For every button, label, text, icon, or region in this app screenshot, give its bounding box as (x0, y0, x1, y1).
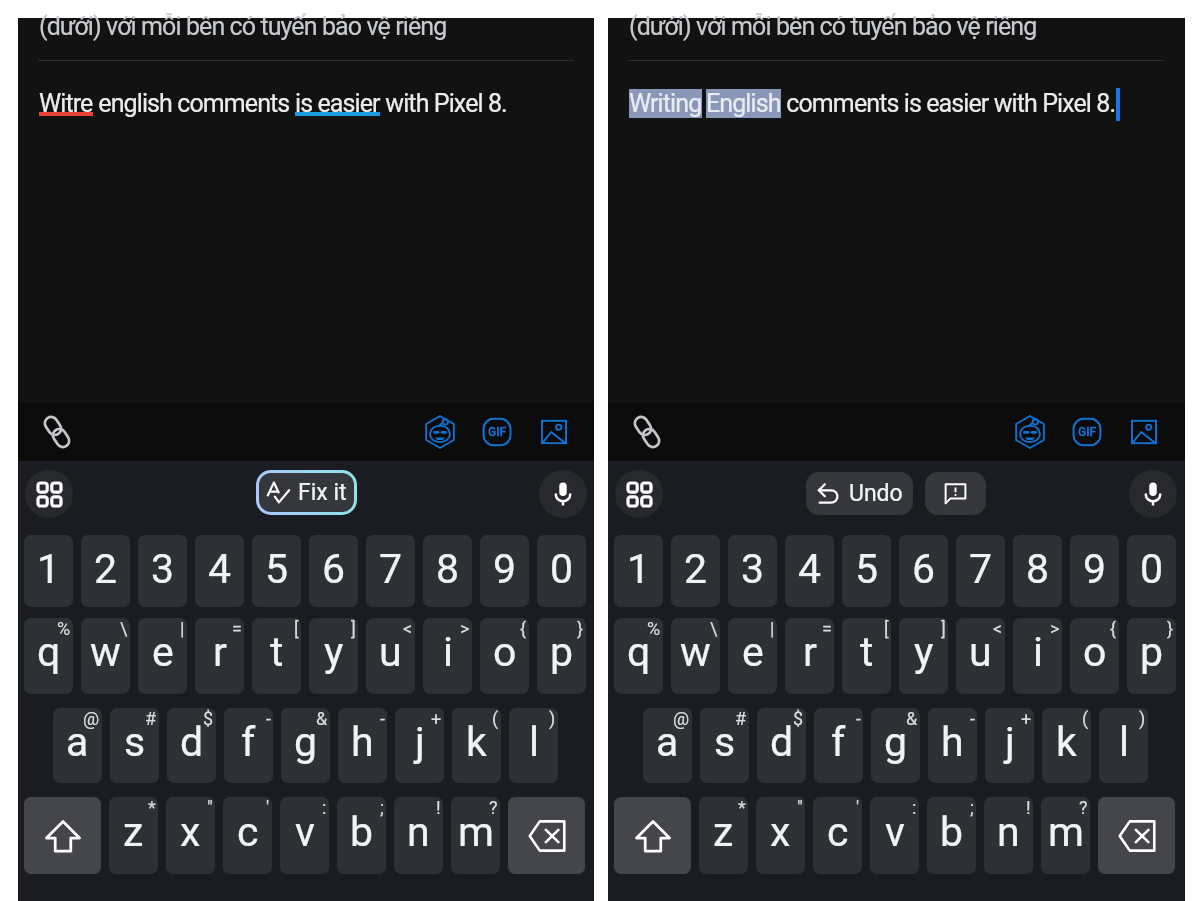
button[interactable]: Reddit (424, 416, 456, 448)
button[interactable]: ; (337, 797, 386, 874)
button[interactable]: 0 (1127, 535, 1176, 607)
button[interactable]: : (870, 797, 919, 874)
button[interactable]: ! (984, 797, 1033, 874)
button[interactable]: % (24, 618, 73, 694)
button[interactable]: < (366, 618, 415, 694)
button[interactable]: GIF (482, 417, 512, 447)
button[interactable]: * (109, 797, 158, 874)
button[interactable]: ' (223, 797, 272, 874)
button[interactable]: 6 (309, 535, 358, 607)
button[interactable]: Undo (806, 472, 913, 515)
button[interactable]: " (166, 797, 215, 874)
button[interactable]: ] (899, 618, 948, 694)
button[interactable]: Backspace (508, 797, 585, 874)
button[interactable]: 8 (1013, 535, 1062, 607)
button[interactable]: Shift (614, 797, 691, 874)
button[interactable]: < (956, 618, 1005, 694)
button[interactable]: Reddit (1014, 416, 1046, 448)
button[interactable]: $ (167, 708, 216, 783)
button[interactable]: ' (813, 797, 862, 874)
button[interactable]: $ (757, 708, 806, 783)
button[interactable]: ? (451, 797, 500, 874)
button[interactable]: + (395, 708, 444, 783)
staticText: h (351, 718, 374, 766)
button[interactable]: = (785, 618, 834, 694)
button[interactable]: + (985, 708, 1034, 783)
button[interactable]: \ (81, 618, 130, 694)
staticText: " (797, 797, 803, 818)
button[interactable]: & (281, 708, 330, 783)
button[interactable]: Backspace (1098, 797, 1175, 874)
button[interactable]: GIF (1072, 417, 1102, 447)
button[interactable]: % (614, 618, 663, 694)
staticText: % (647, 618, 661, 639)
button[interactable]: " (756, 797, 805, 874)
button[interactable]: ; (927, 797, 976, 874)
button[interactable]: Send feedback (925, 472, 986, 515)
button[interactable]: : (280, 797, 329, 874)
button[interactable]: 9 (480, 535, 529, 607)
button[interactable]: # (110, 708, 159, 783)
button[interactable]: 5 (842, 535, 891, 607)
button[interactable]: 7 (956, 535, 1005, 607)
button[interactable]: Open toolbox (615, 470, 663, 518)
button[interactable]: 3 (138, 535, 187, 607)
button[interactable]: | (138, 618, 187, 694)
button[interactable]: - (224, 708, 273, 783)
button[interactable]: [ (252, 618, 301, 694)
button[interactable]: & (871, 708, 920, 783)
staticText: t (270, 628, 284, 676)
button[interactable]: > (423, 618, 472, 694)
button[interactable]: 2 (81, 535, 130, 607)
button[interactable]: | (728, 618, 777, 694)
button[interactable]: ( (1042, 708, 1091, 783)
button[interactable]: - (928, 708, 977, 783)
button[interactable]: - (338, 708, 387, 783)
button[interactable]: Shift (24, 797, 101, 874)
button[interactable]: 3 (728, 535, 777, 607)
button[interactable]: Insert image (1130, 418, 1158, 446)
button[interactable]: 5 (252, 535, 301, 607)
button[interactable]: { (480, 618, 529, 694)
staticText: $ (793, 708, 804, 729)
button[interactable]: Insert link (626, 411, 668, 453)
button[interactable]: 7 (366, 535, 415, 607)
button[interactable]: 0 (537, 535, 586, 607)
button[interactable]: 9 (1070, 535, 1119, 607)
staticText: r (213, 628, 227, 676)
staticText: k (466, 718, 487, 766)
button[interactable]: ! (394, 797, 443, 874)
button[interactable]: 6 (899, 535, 948, 607)
button[interactable]: > (1013, 618, 1062, 694)
button[interactable]: 4 (785, 535, 834, 607)
button[interactable]: = (195, 618, 244, 694)
button[interactable]: Voice input (1129, 470, 1177, 518)
button[interactable]: 4 (195, 535, 244, 607)
button[interactable]: ) (509, 708, 558, 783)
button[interactable]: Voice input (539, 470, 587, 518)
button[interactable]: Insert image (540, 418, 568, 446)
button[interactable]: ] (309, 618, 358, 694)
button[interactable]: @ (53, 708, 102, 783)
button[interactable]: ( (452, 708, 501, 783)
button[interactable]: { (1070, 618, 1119, 694)
button[interactable]: 1 (614, 535, 663, 607)
button[interactable]: 8 (423, 535, 472, 607)
button[interactable]: ? (1041, 797, 1090, 874)
button[interactable]: * (699, 797, 748, 874)
button[interactable]: 1 (24, 535, 73, 607)
button[interactable]: \ (671, 618, 720, 694)
button[interactable]: Open toolbox (25, 470, 73, 518)
button[interactable]: } (1127, 618, 1176, 694)
button[interactable]: Fix it (259, 473, 354, 512)
button[interactable]: ) (1099, 708, 1148, 783)
staticText: < (993, 618, 1003, 639)
button[interactable]: # (700, 708, 749, 783)
button[interactable]: @ (643, 708, 692, 783)
button[interactable]: - (814, 708, 863, 783)
button[interactable]: Insert link (36, 411, 78, 453)
button[interactable]: } (537, 618, 586, 694)
button[interactable]: 2 (671, 535, 720, 607)
button[interactable]: [ (842, 618, 891, 694)
staticText: t (860, 628, 874, 676)
